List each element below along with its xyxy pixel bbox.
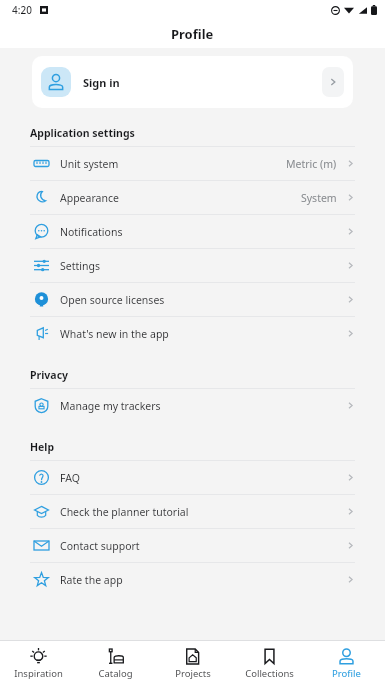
button[interactable]: Open source licenses <box>30 283 355 316</box>
staticText: Profile <box>332 667 361 680</box>
staticText: What's new in the app <box>60 327 169 341</box>
staticText: Sign in <box>83 75 120 90</box>
staticText: Application settings <box>30 126 135 140</box>
staticText: Notifications <box>60 225 123 239</box>
staticText: Open source licenses <box>60 293 165 307</box>
staticText: System <box>301 191 337 205</box>
button[interactable]: Rate the app <box>30 563 355 596</box>
staticText: Manage my trackers <box>60 399 161 413</box>
button[interactable]: Contact support <box>30 529 355 562</box>
button[interactable]: Notifications <box>30 215 355 248</box>
button[interactable]: What's new in the app <box>30 317 355 350</box>
button[interactable]: Inspiration <box>0 641 77 686</box>
staticText: Metric (m) <box>286 157 337 171</box>
button[interactable]: Sign in <box>32 56 353 108</box>
button[interactable]: Settings <box>30 249 355 282</box>
staticText: Privacy <box>30 368 69 382</box>
staticText: Collections <box>245 667 294 680</box>
staticText: Unit system <box>60 157 119 171</box>
button[interactable]: Check the planner tutorial <box>30 495 355 528</box>
staticText: Catalog <box>98 667 133 680</box>
staticText: Profile <box>171 25 214 43</box>
staticText: Projects <box>175 667 211 680</box>
staticText: Rate the app <box>60 573 123 587</box>
staticText: Appearance <box>60 191 119 205</box>
staticText: FAQ <box>60 471 80 485</box>
staticText: Help <box>30 440 55 454</box>
staticText: Settings <box>60 259 100 273</box>
button[interactable]: Projects <box>154 641 231 686</box>
staticText: Contact support <box>60 539 140 553</box>
staticText: Inspiration <box>14 667 63 680</box>
button[interactable]: FAQ <box>30 461 355 494</box>
button[interactable]: Appearance <box>30 181 355 214</box>
button[interactable]: Manage my trackers <box>30 389 355 422</box>
button[interactable]: Collections <box>231 641 308 686</box>
staticText: 4:20 <box>12 3 32 17</box>
staticText: Check the planner tutorial <box>60 505 189 519</box>
button[interactable]: Catalog <box>77 641 154 686</box>
button[interactable]: Profile <box>308 641 385 686</box>
button[interactable]: Unit system <box>30 147 355 180</box>
